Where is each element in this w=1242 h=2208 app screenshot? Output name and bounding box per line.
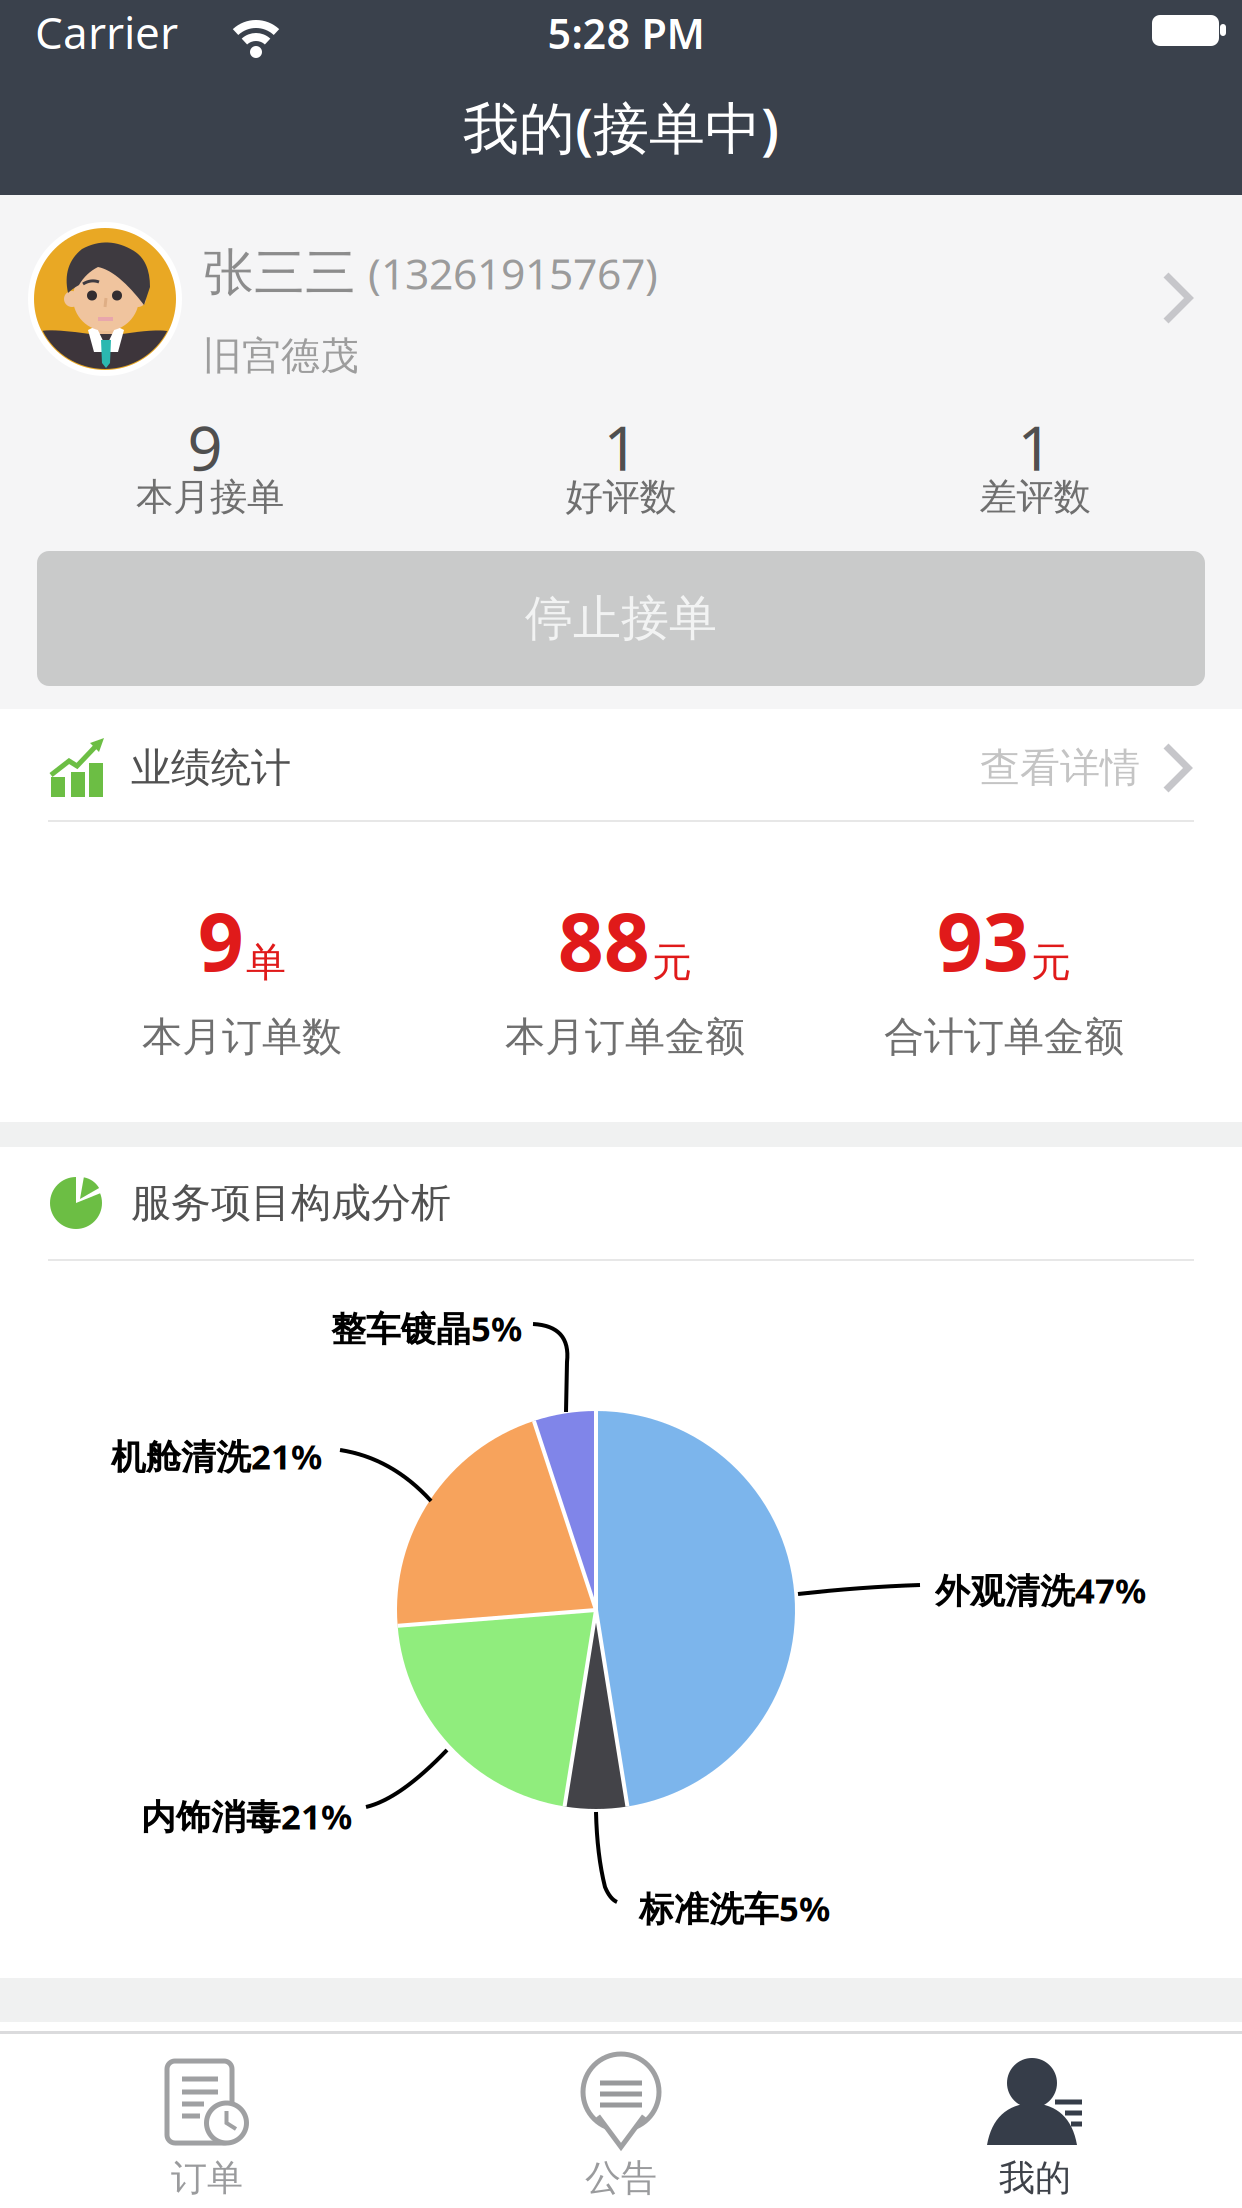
- staticText: 9: [198, 887, 244, 993]
- staticText: (13261915767): [368, 245, 658, 301]
- staticText: 88: [558, 887, 650, 993]
- staticText: 查看详情: [980, 743, 1140, 792]
- staticText: 5:28 PM: [547, 6, 704, 60]
- staticText: 我的: [999, 2156, 1071, 2200]
- button[interactable]: 订单: [0, 2036, 414, 2208]
- button[interactable]: 我的: [828, 2036, 1242, 2208]
- staticText: 元: [652, 938, 692, 987]
- staticText: 好评数: [565, 474, 676, 520]
- button[interactable]: 公告: [414, 2036, 828, 2208]
- staticText: 旧宫德茂: [203, 332, 359, 380]
- button[interactable]: 张三三: [0, 195, 1242, 405]
- staticText: 单: [246, 938, 286, 987]
- staticText: 我的(接单中): [463, 90, 779, 164]
- staticText: 内饰消毒21%: [141, 1793, 352, 1839]
- staticText: 93: [937, 887, 1029, 993]
- staticText: 订单: [171, 2156, 243, 2200]
- staticText: 元: [1031, 938, 1071, 987]
- staticText: 本月订单数: [142, 1012, 342, 1061]
- staticText: 公告: [585, 2156, 657, 2200]
- button[interactable]: 业绩统计: [0, 709, 1242, 821]
- staticText: 标准洗车5%: [639, 1885, 830, 1931]
- staticText: 服务项目构成分析: [131, 1178, 451, 1227]
- staticText: 1: [1017, 406, 1052, 488]
- staticText: 本月接单: [136, 474, 284, 520]
- staticText: 外观清洗47%: [935, 1567, 1146, 1613]
- staticText: 9: [187, 406, 222, 488]
- staticText: Carrier: [35, 3, 178, 61]
- staticText: 业绩统计: [131, 743, 291, 792]
- staticText: 机舱清洗21%: [111, 1433, 322, 1479]
- button[interactable]: 停止接单: [37, 551, 1205, 686]
- staticText: 停止接单: [525, 589, 717, 648]
- staticText: 合计订单金额: [884, 1012, 1124, 1061]
- staticText: 1: [603, 406, 638, 488]
- staticText: 差评数: [979, 474, 1090, 520]
- staticText: 张三三: [203, 242, 356, 304]
- staticText: 整车镀晶5%: [331, 1305, 522, 1351]
- staticText: 本月订单金额: [505, 1012, 745, 1061]
